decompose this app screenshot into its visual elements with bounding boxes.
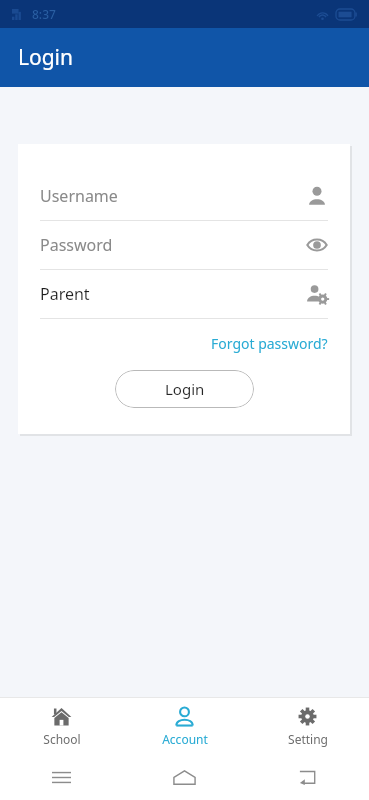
staticText: Setting <box>288 731 328 747</box>
staticText: Parent <box>40 283 306 305</box>
button[interactable]: Setting <box>246 697 369 755</box>
button[interactable]: Account <box>123 697 246 755</box>
other: Show password <box>306 234 328 256</box>
staticText: Login <box>18 43 74 72</box>
staticText: Forgot password? <box>211 334 328 353</box>
other: Choose role <box>306 283 328 305</box>
button[interactable]: Home <box>123 755 246 800</box>
staticText: School <box>43 731 81 747</box>
button[interactable]: Password <box>40 221 328 269</box>
staticText: Username <box>40 185 306 207</box>
staticText: 8:37 <box>32 6 56 22</box>
button[interactable]: Login <box>115 370 254 408</box>
button[interactable]: Back <box>246 755 369 800</box>
button[interactable]: Forgot password? <box>211 331 328 356</box>
button[interactable]: Username <box>40 172 328 220</box>
button[interactable]: Parent <box>40 270 328 318</box>
staticText: Login <box>165 379 205 399</box>
staticText: Password <box>40 234 306 256</box>
staticText: Account <box>162 731 208 747</box>
other: Username <box>306 185 328 207</box>
button[interactable]: School <box>0 697 123 755</box>
button[interactable]: Recent apps <box>0 755 123 800</box>
